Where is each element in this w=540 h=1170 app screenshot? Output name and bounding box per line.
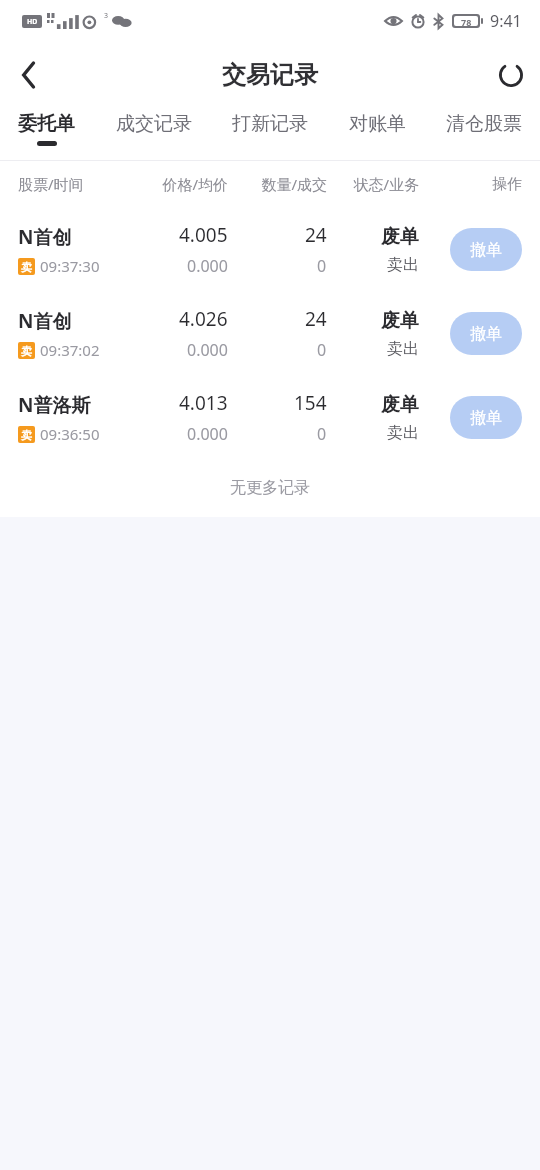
staticText: 卖 bbox=[21, 428, 32, 442]
staticText: 撤单 bbox=[470, 240, 502, 260]
staticText: 状态/业务 bbox=[327, 174, 419, 194]
staticText: 24 bbox=[305, 222, 327, 248]
button[interactable]: 委托单 bbox=[14, 108, 79, 146]
button[interactable]: Back bbox=[0, 46, 58, 104]
staticText: 09:37:30 bbox=[40, 256, 100, 276]
staticText: 4.005 bbox=[179, 222, 228, 248]
staticText: 撤单 bbox=[470, 408, 502, 428]
staticText: 卖 bbox=[21, 344, 32, 358]
staticText: 撤单 bbox=[470, 324, 502, 344]
button[interactable]: Refresh bbox=[482, 46, 540, 104]
staticText: 0 bbox=[317, 423, 327, 445]
staticText: 卖 bbox=[21, 260, 32, 274]
staticText: 操作 bbox=[419, 175, 522, 194]
button[interactable]: N首创 bbox=[0, 291, 540, 375]
staticText: 0 bbox=[317, 255, 327, 277]
staticText: 打新记录 bbox=[232, 112, 308, 136]
staticText: N普洛斯 bbox=[18, 392, 91, 418]
staticText: 交易记录 bbox=[222, 60, 318, 90]
staticText: 0 bbox=[317, 339, 327, 361]
staticText: 股票/时间 bbox=[18, 174, 128, 194]
button[interactable]: N普洛斯 bbox=[0, 375, 540, 459]
button[interactable]: 清仓股票 bbox=[442, 108, 526, 141]
staticText: 09:36:50 bbox=[40, 424, 100, 444]
staticText: 价格/均价 bbox=[128, 174, 228, 194]
staticText: 0.000 bbox=[187, 339, 228, 361]
staticText: N首创 bbox=[18, 224, 72, 250]
button[interactable]: N首创 bbox=[0, 207, 540, 291]
staticText: 卖出 bbox=[387, 255, 419, 275]
staticText: 4.026 bbox=[179, 306, 228, 332]
button[interactable]: 撤单 bbox=[450, 228, 522, 271]
staticText: 0.000 bbox=[187, 423, 228, 445]
staticText: 9:41 bbox=[490, 10, 522, 32]
staticText: 数量/成交 bbox=[228, 174, 327, 194]
staticText: 废单 bbox=[381, 225, 419, 249]
button[interactable]: 撤单 bbox=[450, 312, 522, 355]
staticText: 清仓股票 bbox=[446, 112, 522, 136]
staticText: 废单 bbox=[381, 309, 419, 333]
staticText: 09:37:02 bbox=[40, 340, 100, 360]
button[interactable]: 撤单 bbox=[450, 396, 522, 439]
staticText: 78 bbox=[461, 16, 472, 26]
staticText: 对账单 bbox=[349, 112, 406, 136]
staticText: N首创 bbox=[18, 308, 72, 334]
button[interactable]: 打新记录 bbox=[228, 108, 312, 141]
staticText: 无更多记录 bbox=[230, 478, 310, 498]
staticText: HD bbox=[27, 17, 38, 27]
staticText: 卖出 bbox=[387, 339, 419, 359]
staticText: 4.013 bbox=[179, 390, 228, 416]
button[interactable]: 成交记录 bbox=[112, 108, 196, 141]
staticText: 24 bbox=[305, 306, 327, 332]
staticText: 委托单 bbox=[18, 112, 75, 136]
button[interactable]: 对账单 bbox=[345, 108, 410, 141]
staticText: 卖出 bbox=[387, 423, 419, 443]
staticText: 0.000 bbox=[187, 255, 228, 277]
staticText: 成交记录 bbox=[116, 112, 192, 136]
staticText: 3 bbox=[104, 11, 109, 21]
staticText: 154 bbox=[294, 390, 327, 416]
staticText: 废单 bbox=[381, 393, 419, 417]
